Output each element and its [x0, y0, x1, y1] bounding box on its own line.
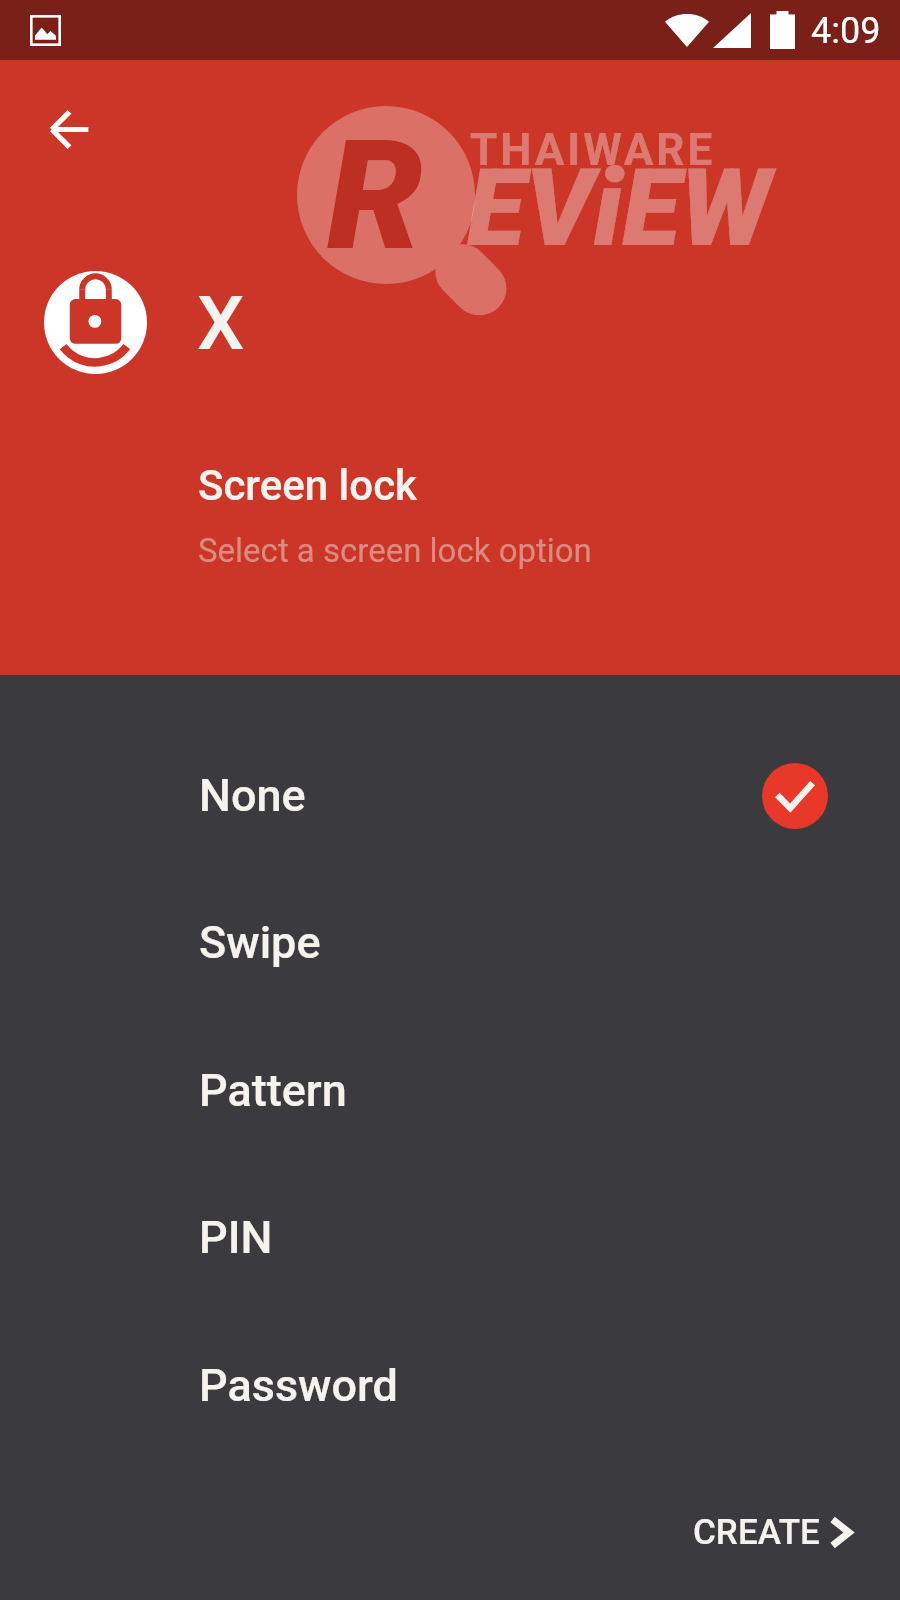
staticText: Swipe — [199, 916, 321, 969]
staticText: Screen lock — [198, 461, 417, 510]
staticText: CREATE — [693, 1512, 820, 1553]
button[interactable]: Back — [27, 87, 111, 171]
button[interactable]: PIN — [0, 1164, 900, 1312]
staticText: THAIWARE — [470, 124, 716, 176]
staticText: X — [197, 279, 245, 367]
button[interactable]: Pattern — [0, 1017, 900, 1165]
button[interactable]: CREATE — [681, 1500, 867, 1565]
staticText: EViEW — [467, 146, 771, 271]
staticText: R — [327, 107, 424, 285]
staticText: PIN — [199, 1211, 273, 1264]
staticText: 4:09 — [811, 10, 881, 52]
staticText: Pattern — [199, 1064, 347, 1117]
other: Selected — [762, 763, 828, 829]
staticText: None — [199, 769, 306, 822]
button[interactable]: Swipe — [0, 869, 900, 1017]
staticText: Select a screen lock option — [198, 531, 592, 570]
other: Screenshot captured — [30, 15, 61, 46]
button[interactable]: None — [0, 722, 900, 870]
button[interactable]: Password — [0, 1312, 900, 1460]
staticText: Password — [199, 1359, 398, 1412]
